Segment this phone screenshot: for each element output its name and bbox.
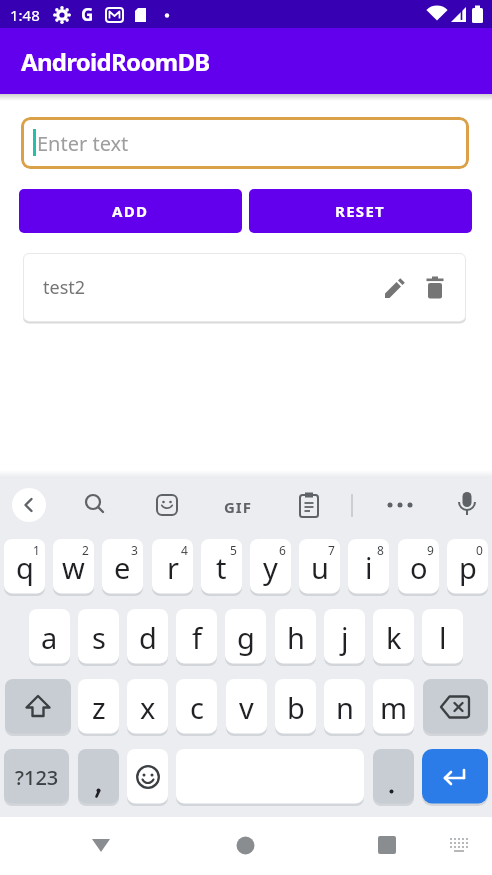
staticText: z — [92, 688, 106, 727]
button[interactable]: RESET — [249, 189, 472, 233]
button[interactable]: c — [176, 679, 217, 735]
button[interactable]: t — [201, 539, 242, 595]
button[interactable]: b — [275, 679, 316, 735]
button[interactable]: j — [324, 609, 365, 665]
button[interactable]: w — [53, 539, 94, 595]
button[interactable]: d — [127, 609, 168, 665]
staticText: 5 — [230, 542, 237, 558]
button[interactable]: Enter text — [21, 117, 469, 169]
button[interactable]: x — [127, 679, 168, 735]
staticText: j — [341, 618, 349, 657]
staticText: q — [16, 548, 34, 587]
button[interactable] — [365, 820, 409, 864]
button[interactable]: g — [225, 609, 266, 665]
button[interactable]: ?123 — [4, 749, 69, 805]
button[interactable]: y — [250, 539, 291, 595]
staticText: RESET — [335, 201, 386, 221]
staticText: p — [459, 548, 477, 587]
staticText: f — [192, 618, 202, 657]
button[interactable] — [5, 679, 71, 735]
staticText: GIF — [224, 497, 252, 517]
button[interactable]: n — [324, 679, 365, 735]
button[interactable] — [381, 274, 409, 302]
button[interactable] — [224, 820, 268, 864]
button[interactable] — [127, 749, 168, 805]
button[interactable] — [80, 820, 124, 864]
button[interactable] — [145, 483, 189, 527]
staticText: i — [365, 548, 373, 587]
staticText: ADD — [112, 201, 149, 221]
staticText: c — [190, 688, 204, 727]
staticText: 1 — [33, 542, 40, 558]
staticText: test2 — [43, 275, 86, 300]
staticText: u — [311, 548, 329, 587]
button[interactable]: q — [4, 539, 45, 595]
staticText: y — [263, 548, 278, 587]
staticText: t — [216, 548, 227, 587]
staticText: v — [239, 688, 254, 727]
button[interactable]: i — [348, 539, 389, 595]
button[interactable]: k — [373, 609, 414, 665]
button[interactable] — [78, 749, 119, 805]
staticText: g — [237, 618, 255, 657]
staticText: l — [439, 618, 447, 657]
button[interactable]: s — [78, 609, 119, 665]
staticText: Enter text — [37, 130, 129, 157]
staticText: s — [92, 618, 106, 657]
button[interactable]: h — [275, 609, 316, 665]
button[interactable]: f — [176, 609, 217, 665]
staticText: 4 — [181, 542, 188, 558]
staticText: r — [167, 548, 179, 587]
staticText: 0 — [476, 542, 483, 558]
staticText: 3 — [131, 542, 138, 558]
staticText: e — [114, 548, 131, 587]
staticText: d — [139, 618, 157, 657]
staticText: 1:48 — [10, 5, 40, 25]
staticText: x — [140, 688, 156, 727]
button[interactable]: test2 — [23, 253, 466, 322]
button[interactable]: m — [373, 679, 414, 735]
button[interactable] — [440, 820, 478, 864]
staticText: k — [386, 618, 402, 657]
staticText: 8 — [377, 542, 384, 558]
staticText: m — [380, 688, 408, 727]
button[interactable] — [421, 274, 449, 302]
staticText: n — [336, 688, 354, 727]
staticText: G — [81, 3, 94, 26]
button[interactable] — [373, 749, 414, 805]
button[interactable]: l — [422, 609, 463, 665]
button[interactable]: o — [398, 539, 439, 595]
button[interactable] — [378, 483, 422, 527]
staticText: 6 — [279, 542, 286, 558]
button[interactable]: r — [152, 539, 193, 595]
staticText: b — [287, 688, 305, 727]
button[interactable] — [423, 679, 488, 735]
button[interactable]: u — [299, 539, 340, 595]
button[interactable]: a — [29, 609, 70, 665]
staticText: w — [62, 548, 85, 587]
staticText: 9 — [427, 542, 434, 558]
staticText: o — [410, 548, 428, 587]
button[interactable] — [214, 483, 258, 527]
button[interactable]: v — [226, 679, 267, 735]
button[interactable] — [12, 488, 46, 522]
staticText: 7 — [328, 542, 335, 558]
button[interactable]: p — [447, 539, 488, 595]
staticText: a — [41, 618, 58, 657]
button[interactable]: e — [102, 539, 143, 595]
staticText: AndroidRoomDB — [21, 45, 210, 78]
button[interactable] — [445, 483, 489, 527]
button[interactable]: z — [78, 679, 119, 735]
button[interactable]: ADD — [19, 189, 242, 233]
button[interactable] — [73, 483, 117, 527]
button[interactable] — [287, 483, 331, 527]
staticText: ?123 — [15, 764, 59, 791]
button[interactable] — [422, 749, 488, 805]
staticText: h — [287, 618, 305, 657]
button[interactable] — [176, 749, 364, 805]
staticText: 2 — [82, 542, 89, 558]
